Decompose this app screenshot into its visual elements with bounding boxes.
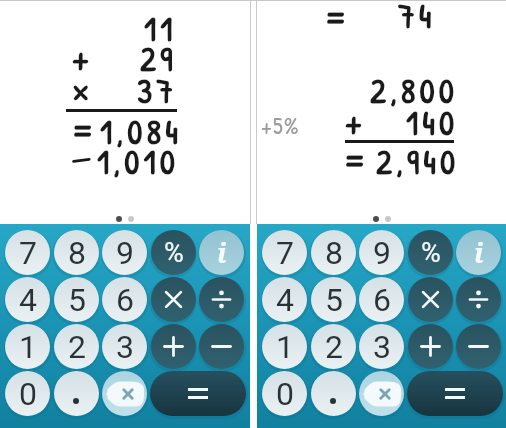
button[interactable] [407,371,503,416]
staticText: 6 [116,281,134,319]
button[interactable]: 2 [311,324,356,369]
button[interactable] [359,371,404,416]
staticText: 0 [276,375,294,413]
button[interactable]: % [408,230,453,275]
button[interactable]: 6 [359,277,404,322]
staticText: 0 [19,375,37,413]
staticText: 1 [19,328,37,366]
staticText: 7 [19,234,37,272]
staticText: 2 [68,328,86,366]
button[interactable]: i [456,230,501,275]
staticText: 3 [116,328,134,366]
button[interactable] [456,277,501,322]
staticText: 5 [68,281,86,319]
button[interactable] [150,371,246,416]
button[interactable] [456,324,501,369]
staticText: 140 [406,100,459,146]
staticText: 1,010 [97,139,180,185]
button[interactable]: 9 [102,230,147,275]
staticText: = [342,130,367,188]
button[interactable]: 5 [54,277,99,322]
button[interactable] [408,277,453,322]
staticText: 7 [276,234,294,272]
staticText: 3 [373,328,391,366]
button[interactable]: 7 [5,230,50,275]
button[interactable]: i [199,230,244,275]
staticText: = [323,0,348,45]
button[interactable]: 7 [262,230,307,275]
button[interactable]: 5 [311,277,356,322]
button[interactable] [54,371,99,416]
staticText: 4 [19,281,37,319]
button[interactable]: 0 [5,371,50,416]
staticText: 8 [325,234,343,272]
staticText: + [72,32,90,81]
staticText: i [217,234,227,271]
staticText: 2 [325,328,343,366]
staticText: 1 [276,328,294,366]
staticText: × [72,65,90,114]
button[interactable]: 0 [262,371,307,416]
button[interactable]: 4 [262,277,307,322]
staticText: % [164,237,184,269]
staticText: +5% [261,110,300,141]
staticText: 37 [137,68,178,114]
staticText: 9 [116,234,134,272]
button[interactable] [199,277,244,322]
button[interactable]: 6 [102,277,147,322]
staticText: 4 [276,281,294,319]
staticText: 6 [373,281,391,319]
button[interactable] [311,371,356,416]
staticText: 29 [140,36,177,82]
staticText: = [70,100,95,158]
button[interactable]: 8 [311,230,356,275]
staticText: 11 [144,6,177,52]
button[interactable] [151,324,196,369]
staticText: 1,084 [100,109,182,155]
staticText: 2,800 [370,68,458,114]
button[interactable]: 1 [5,324,50,369]
staticText: % [421,237,441,269]
button[interactable]: 3 [102,324,147,369]
button[interactable] [408,324,453,369]
button[interactable]: % [151,230,196,275]
button[interactable]: 1 [262,324,307,369]
button[interactable] [199,324,244,369]
staticText: i [474,234,484,271]
button[interactable]: 9 [359,230,404,275]
staticText: 8 [68,234,86,272]
button[interactable]: 2 [54,324,99,369]
button[interactable]: 8 [54,230,99,275]
button[interactable] [151,277,196,322]
button[interactable]: 3 [359,324,404,369]
staticText: 74 [398,0,436,39]
staticText: 5 [325,281,343,319]
staticText: + [345,96,363,145]
button[interactable] [102,371,147,416]
button[interactable]: 4 [5,277,50,322]
staticText: 9 [373,234,391,272]
staticText: 2,940 [376,139,460,185]
